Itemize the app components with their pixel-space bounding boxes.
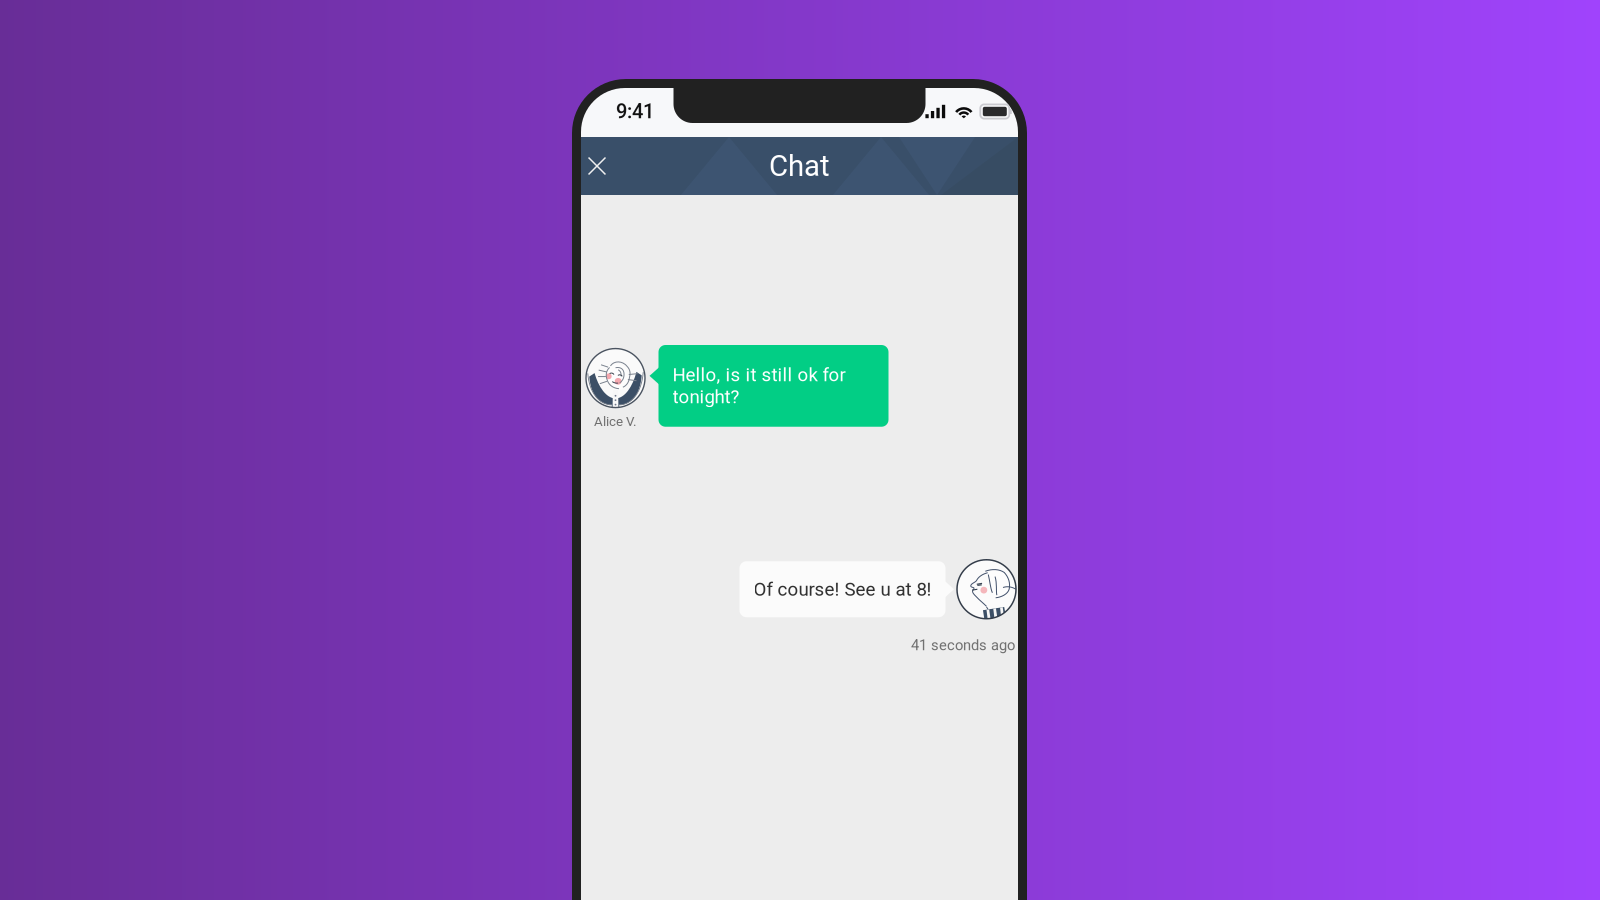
staticText: Hello, is it still ok for tonight?: [672, 364, 845, 408]
button[interactable]: Alice V. profile: [586, 349, 645, 408]
button[interactable]: Of course! See u at 8!: [739, 561, 945, 617]
staticText: 41 seconds ago: [911, 637, 1015, 654]
button[interactable]: Hello, is it still ok for tonight?: [658, 345, 888, 427]
staticText: 9:41: [616, 100, 654, 123]
staticText: Chat: [769, 149, 830, 183]
button[interactable]: Close: [581, 142, 613, 190]
staticText: Of course! See u at 8!: [753, 578, 931, 600]
button[interactable]: Your profile: [957, 560, 1016, 619]
staticText: Alice V.: [594, 414, 637, 429]
